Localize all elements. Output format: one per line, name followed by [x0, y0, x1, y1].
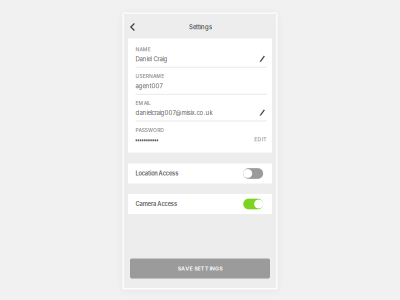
staticText: Daniel Craig	[135, 55, 167, 63]
staticText: Camera Access	[135, 201, 177, 207]
staticText: PASSWORD	[135, 127, 164, 133]
staticText: danielcraig007@misix.co.uk	[135, 109, 212, 117]
button[interactable]: SAVE SETTINGS	[130, 258, 270, 278]
staticText: Location Access	[135, 170, 178, 177]
staticText: Settings	[189, 23, 212, 31]
button[interactable]: Location Access	[0, 0, 400, 300]
button[interactable]: Edit email	[256, 106, 269, 119]
staticText: SAVE SETTINGS	[178, 265, 222, 272]
staticText: EMAIL	[135, 100, 151, 106]
button[interactable]: Edit name	[256, 52, 269, 65]
staticText: EDIT	[254, 136, 266, 142]
staticText: agent007	[135, 82, 162, 90]
button[interactable]: EDIT	[246, 135, 266, 144]
staticText: NAME	[135, 46, 151, 52]
staticText: USERNAME	[135, 73, 164, 79]
button[interactable]: Back	[125, 18, 140, 35]
button[interactable]: Camera Access	[0, 0, 400, 300]
